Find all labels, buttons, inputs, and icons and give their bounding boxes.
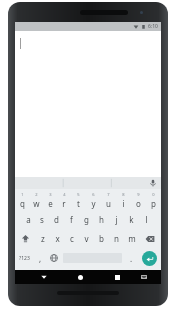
staticText: j [115, 214, 118, 225]
button[interactable]: d [49, 210, 64, 229]
button[interactable]: Change keyboard language [47, 248, 60, 268]
staticText: 5 [77, 192, 80, 197]
staticText: . [130, 253, 133, 264]
staticText: t [77, 198, 80, 209]
button[interactable]: 3 [43, 191, 57, 210]
staticText: w [33, 198, 40, 209]
button[interactable]: z [36, 229, 50, 248]
button[interactable]: 1 [15, 191, 29, 210]
staticText: s [40, 214, 44, 225]
staticText: e [48, 198, 53, 209]
button[interactable]: a [21, 210, 35, 229]
button[interactable]: f [64, 210, 79, 229]
staticText: h [99, 214, 104, 225]
button[interactable]: h [94, 210, 109, 229]
staticText: m [128, 233, 136, 244]
staticText: l [145, 214, 148, 225]
staticText: v [84, 233, 89, 244]
staticText: z [41, 233, 45, 244]
button[interactable]: b [94, 229, 109, 248]
button[interactable]: k [124, 210, 139, 229]
staticText: o [136, 198, 141, 209]
button[interactable]: Voice input [145, 177, 161, 189]
staticText: y [91, 198, 96, 209]
button[interactable]: Switch keyboard [133, 270, 154, 284]
button[interactable]: n [109, 229, 124, 248]
button[interactable]: , [34, 248, 47, 268]
staticText: a [26, 214, 31, 225]
staticText: d [54, 214, 59, 225]
button[interactable]: m [124, 229, 139, 248]
staticText: 0 [152, 192, 155, 197]
button[interactable]: 4 [57, 191, 71, 210]
staticText: ?123 [19, 255, 30, 262]
staticText: 2 [35, 192, 38, 197]
staticText: p [151, 198, 156, 209]
button[interactable]: 0 [146, 191, 161, 210]
staticText: c [70, 233, 74, 244]
button[interactable]: l [139, 210, 154, 229]
button[interactable]: ?123 [15, 248, 34, 268]
staticText: 6 [92, 192, 95, 197]
staticText: g [84, 214, 89, 225]
button[interactable]: Shift [15, 229, 36, 248]
button[interactable]: j [109, 210, 124, 229]
button[interactable]: Recent apps [107, 270, 128, 284]
button[interactable]: Back [33, 270, 54, 284]
button[interactable]: v [79, 229, 94, 248]
button[interactable]: 5 [71, 191, 86, 210]
staticText: x [55, 233, 60, 244]
staticText: n [114, 233, 119, 244]
staticText: r [62, 198, 66, 209]
button[interactable]: Enter [138, 248, 161, 268]
button[interactable]: . [125, 248, 138, 268]
button[interactable]: 6 [86, 191, 101, 210]
staticText: 8 [122, 192, 125, 197]
staticText: i [122, 198, 125, 209]
button[interactable]: 8 [116, 191, 131, 210]
button[interactable]: 9 [131, 191, 146, 210]
staticText: , [39, 253, 42, 264]
staticText: u [106, 198, 111, 209]
staticText: q [20, 198, 25, 209]
button[interactable]: Home [70, 270, 91, 284]
staticText: 6:10 [148, 23, 158, 30]
button[interactable]: s [35, 210, 49, 229]
button[interactable]: x [50, 229, 64, 248]
button[interactable]: c [64, 229, 79, 248]
staticText: b [99, 233, 104, 244]
staticText: 7 [107, 192, 110, 197]
button[interactable]: 7 [101, 191, 116, 210]
staticText: f [70, 214, 73, 225]
staticText: 3 [49, 192, 52, 197]
staticText: 4 [63, 192, 66, 197]
staticText: 1 [21, 192, 24, 197]
staticText: 9 [137, 192, 140, 197]
button[interactable]: g [79, 210, 94, 229]
button[interactable]: 2 [29, 191, 43, 210]
button[interactable]: Backspace [139, 229, 161, 248]
staticText: k [129, 214, 134, 225]
